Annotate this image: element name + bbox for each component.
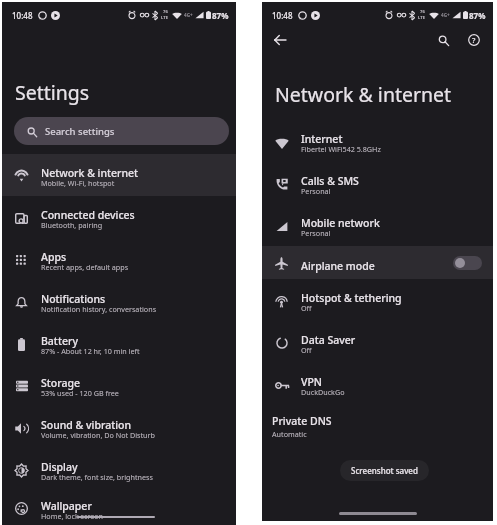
staticText: DuckDuckGo <box>301 387 345 397</box>
button[interactable]: Display <box>2 448 236 490</box>
button[interactable]: Search settings <box>14 117 229 145</box>
staticText: Battery <box>41 334 78 348</box>
staticText: Mobile, Wi-Fi, hotspot <box>41 178 115 188</box>
staticText: 4G+ <box>184 12 193 18</box>
button[interactable]: Airplane mode <box>262 246 493 279</box>
staticText: 76 <box>420 9 425 15</box>
staticText: Search settings <box>45 125 115 138</box>
staticText: LTE <box>418 15 426 21</box>
button[interactable]: Calls & SMS <box>262 162 493 204</box>
staticText: Sound & vibration <box>41 418 132 432</box>
staticText: 87% <box>212 10 229 21</box>
button[interactable]: VPN <box>262 363 493 405</box>
staticText: Volume, vibration, Do Not Disturb <box>41 430 155 440</box>
staticText: 87% <box>469 10 486 21</box>
staticText: Personal <box>301 186 331 196</box>
staticText: Dark theme, font size, brightness <box>41 472 153 482</box>
button[interactable]: Apps <box>2 238 236 280</box>
button[interactable]: Mobile network <box>262 204 493 246</box>
staticText: Mobile network <box>301 216 380 230</box>
button[interactable]: Storage <box>2 364 236 406</box>
staticText: Screenshot saved <box>351 465 418 476</box>
staticText: Settings <box>15 79 90 106</box>
button[interactable]: Sound & vibration <box>2 406 236 448</box>
staticText: VPN <box>301 375 323 389</box>
staticText: Network & internet <box>41 166 139 180</box>
staticText: Off <box>301 345 312 355</box>
staticText: 4G+ <box>441 12 450 18</box>
staticText: Notification history, conversations <box>41 304 157 314</box>
staticText: Network & internet <box>275 81 452 108</box>
button[interactable]: Data Saver <box>262 321 493 363</box>
staticText: Airplane mode <box>301 259 375 273</box>
button[interactable]: Wallpaper <box>2 490 236 525</box>
staticText: 53% used - 120 GB free <box>41 388 119 398</box>
staticText: Notifications <box>41 292 106 306</box>
button[interactable]: Connected devices <box>2 196 236 238</box>
staticText: Automatic <box>272 429 307 439</box>
staticText: Hotspot & tethering <box>301 291 402 305</box>
button[interactable]: Hotspot & tethering <box>262 279 493 321</box>
button[interactable]: Search <box>432 29 454 51</box>
staticText: Data Saver <box>301 333 356 347</box>
button[interactable]: Help <box>463 29 485 51</box>
button[interactable]: Private DNS <box>262 405 493 447</box>
staticText: 87% - About 12 hr, 10 min left <box>41 346 140 356</box>
staticText: Apps <box>41 250 67 264</box>
staticText: Bluetooth, pairing <box>41 220 103 230</box>
staticText: Connected devices <box>41 208 135 222</box>
staticText: Off <box>301 303 312 313</box>
staticText: Recent apps, default apps <box>41 262 129 272</box>
button[interactable]: Internet <box>262 120 493 162</box>
staticText: Storage <box>41 376 80 390</box>
button[interactable]: Battery <box>2 322 236 364</box>
staticText: Wallpaper <box>41 499 92 513</box>
staticText: Private DNS <box>272 414 332 428</box>
staticText: 10:48 <box>12 10 33 21</box>
staticText: Personal <box>301 228 331 238</box>
staticText: Calls & SMS <box>301 174 359 188</box>
staticText: Home, lock screen <box>41 511 103 521</box>
staticText: Display <box>41 460 78 474</box>
button[interactable]: Notifications <box>2 280 236 322</box>
staticText: Internet <box>301 132 343 146</box>
staticText: LTE <box>161 15 169 21</box>
staticText: ? <box>472 35 476 45</box>
button[interactable]: Network & internet <box>2 154 236 196</box>
staticText: Fibertel WiFi542 5.8GHz <box>301 144 381 154</box>
button[interactable]: Back <box>268 28 292 52</box>
staticText: 76 <box>163 9 168 15</box>
staticText: 10:48 <box>272 10 293 21</box>
